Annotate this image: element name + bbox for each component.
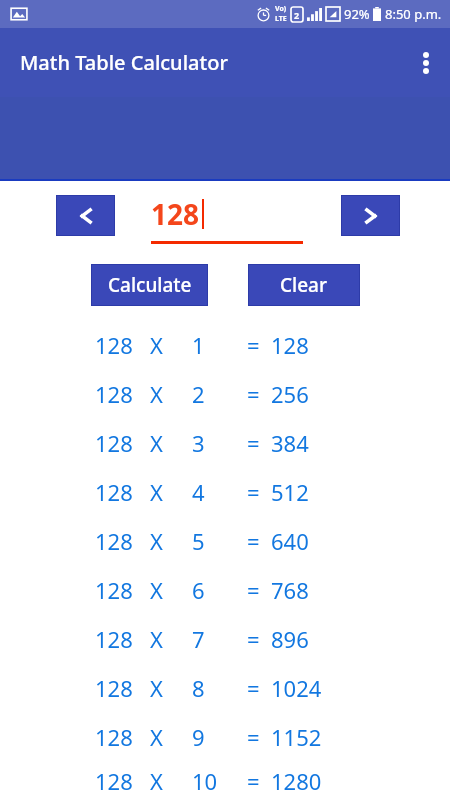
staticText: 128 [95, 330, 150, 360]
staticText: 7 [192, 624, 247, 654]
staticText: 384 [271, 428, 309, 458]
staticText: 10 [192, 766, 247, 796]
staticText: 1024 [271, 673, 322, 703]
staticText: Math Table Calculator [20, 49, 228, 76]
staticText: 1 [192, 330, 247, 360]
staticText: X [150, 766, 192, 796]
staticText: X [150, 477, 192, 507]
staticText: X [150, 330, 192, 360]
button[interactable]: Calculate [92, 265, 207, 305]
staticText: 128 [271, 330, 309, 360]
staticText: X [150, 379, 192, 409]
staticText: 640 [271, 526, 309, 556]
staticText: 128 [151, 195, 200, 233]
staticText: Calculate [108, 272, 192, 298]
staticText: 128 [95, 477, 150, 507]
staticText: 128 [95, 575, 150, 605]
button[interactable]: 128 [0, 516, 450, 565]
staticText: = [247, 673, 271, 703]
staticText: 6 [192, 575, 247, 605]
staticText: = [247, 330, 271, 360]
staticText: = [247, 379, 271, 409]
button[interactable]: 128 [0, 663, 450, 712]
staticText: = [247, 477, 271, 507]
staticText: = [247, 624, 271, 654]
staticText: 92% [344, 5, 370, 23]
staticText: X [150, 722, 192, 752]
button[interactable]: 128 [0, 418, 450, 467]
staticText: = [247, 575, 271, 605]
staticText: = [247, 526, 271, 556]
staticText: X [150, 624, 192, 654]
staticText: X [150, 673, 192, 703]
staticText: 1280 [271, 766, 322, 796]
staticText: 128 [95, 766, 150, 796]
staticText: 5 [192, 526, 247, 556]
staticText: 256 [271, 379, 309, 409]
staticText: 128 [95, 673, 150, 703]
staticText: = [247, 722, 271, 752]
staticText: 512 [271, 477, 309, 507]
staticText: = [247, 428, 271, 458]
button[interactable]: Next [342, 196, 399, 235]
button[interactable]: 128 [0, 761, 450, 800]
button[interactable]: 128 [0, 614, 450, 663]
staticText: 896 [271, 624, 309, 654]
button[interactable]: 128 [0, 320, 450, 369]
staticText: = [247, 766, 271, 796]
button[interactable]: 128 [0, 369, 450, 418]
button[interactable]: 128 [0, 565, 450, 614]
staticText: 2 [192, 379, 247, 409]
button[interactable]: Previous [57, 196, 114, 235]
staticText: 8 [192, 673, 247, 703]
staticText: LTE [275, 14, 287, 24]
button[interactable]: Clear [249, 265, 359, 305]
staticText: 768 [271, 575, 309, 605]
staticText: 128 [95, 526, 150, 556]
staticText: X [150, 526, 192, 556]
staticText: 128 [95, 428, 150, 458]
staticText: X [150, 428, 192, 458]
staticText: Vo) [275, 4, 287, 14]
staticText: 128 [95, 379, 150, 409]
staticText: 1152 [271, 722, 322, 752]
staticText: 8:50 p.m. [385, 5, 442, 23]
button[interactable]: More options [402, 39, 450, 87]
button[interactable]: 128 [0, 467, 450, 516]
staticText: 3 [192, 428, 247, 458]
button[interactable]: 128 [0, 712, 450, 761]
staticText: Clear [280, 272, 328, 298]
staticText: 4 [192, 477, 247, 507]
staticText: 128 [95, 722, 150, 752]
staticText: 128 [95, 624, 150, 654]
staticText: 2 [294, 9, 300, 21]
staticText: X [150, 575, 192, 605]
staticText: 9 [192, 722, 247, 752]
